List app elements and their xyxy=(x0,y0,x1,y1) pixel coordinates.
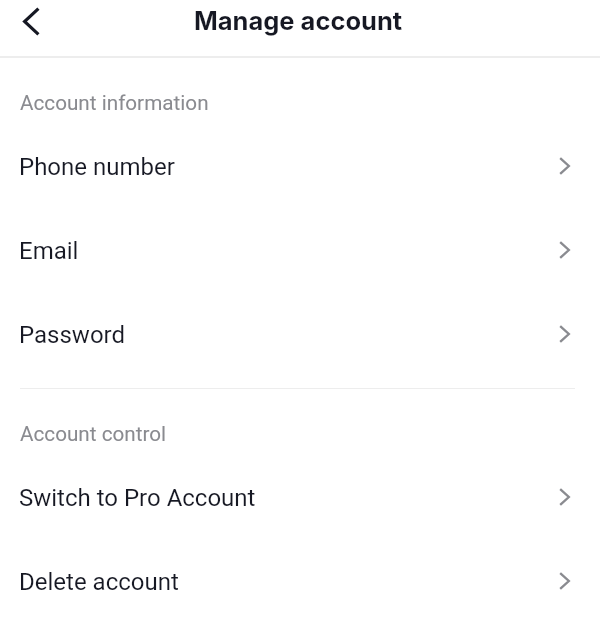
staticText: Phone number xyxy=(19,153,175,181)
staticText: Delete account xyxy=(19,568,179,596)
button[interactable]: Switch to Pro Account xyxy=(0,456,600,540)
staticText: Manage account xyxy=(194,5,403,36)
button[interactable]: Email xyxy=(0,209,600,293)
staticText: Password xyxy=(19,321,126,349)
staticText: Switch to Pro Account xyxy=(19,484,256,512)
staticText: Email xyxy=(19,237,79,265)
button[interactable]: Password xyxy=(0,293,600,377)
button[interactable]: Back xyxy=(9,6,54,51)
staticText: Account control xyxy=(20,422,167,446)
button[interactable]: Delete account xyxy=(0,540,600,624)
staticText: Account information xyxy=(20,91,209,115)
button[interactable]: Phone number xyxy=(0,125,600,209)
